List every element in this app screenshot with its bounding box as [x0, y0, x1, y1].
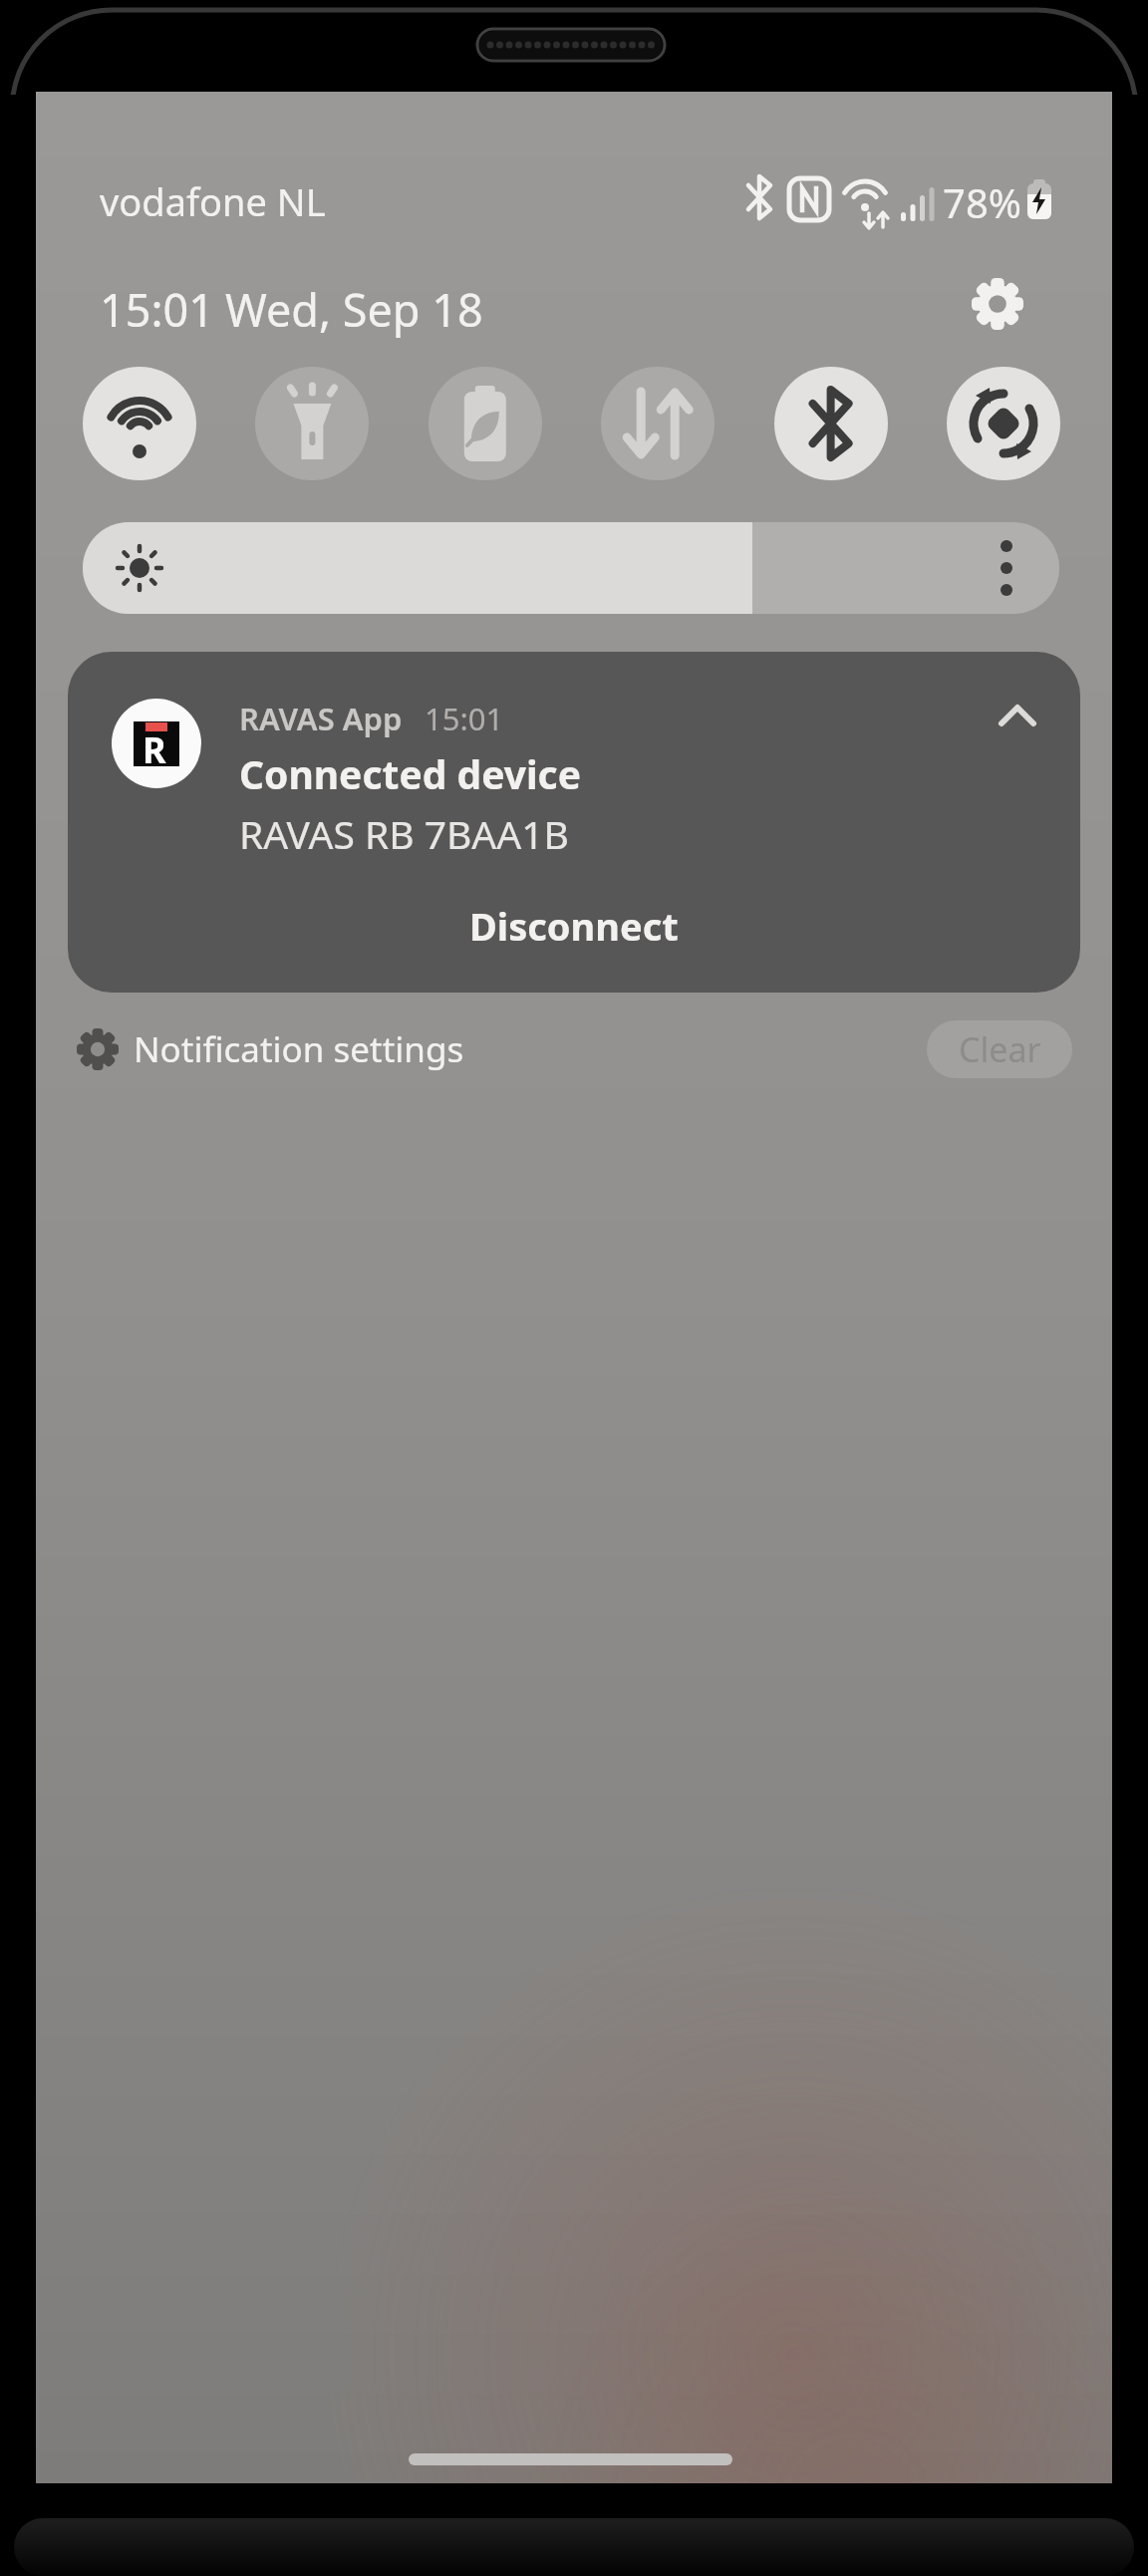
button[interactable] [83, 367, 196, 480]
button[interactable]: Clear [927, 1020, 1072, 1078]
button[interactable] [774, 367, 888, 480]
staticText: 15:01 [425, 698, 504, 739]
staticText: Connected device [239, 747, 582, 800]
button[interactable] [601, 367, 715, 480]
button[interactable]: Notification settings [76, 1025, 464, 1073]
button[interactable] [255, 367, 369, 480]
staticText: Wed, Sep 18 [225, 279, 483, 340]
button[interactable]: R [68, 652, 1080, 993]
button[interactable] [947, 367, 1060, 480]
staticText: 15:01 [100, 279, 215, 340]
staticText: 78% [943, 175, 1021, 229]
staticText: RAVAS RB 7BAA1B [239, 807, 569, 860]
button[interactable] [429, 367, 542, 480]
button[interactable] [83, 522, 1059, 614]
staticText: Clear [959, 1026, 1041, 1072]
button[interactable] [963, 269, 1032, 339]
staticText: vodafone NL [100, 175, 326, 227]
staticText: RAVAS App [239, 698, 403, 739]
staticText: Disconnect [469, 900, 679, 952]
button[interactable]: Disconnect [68, 881, 1080, 971]
staticText: Notification settings [134, 1025, 464, 1073]
staticText: R [143, 725, 166, 774]
